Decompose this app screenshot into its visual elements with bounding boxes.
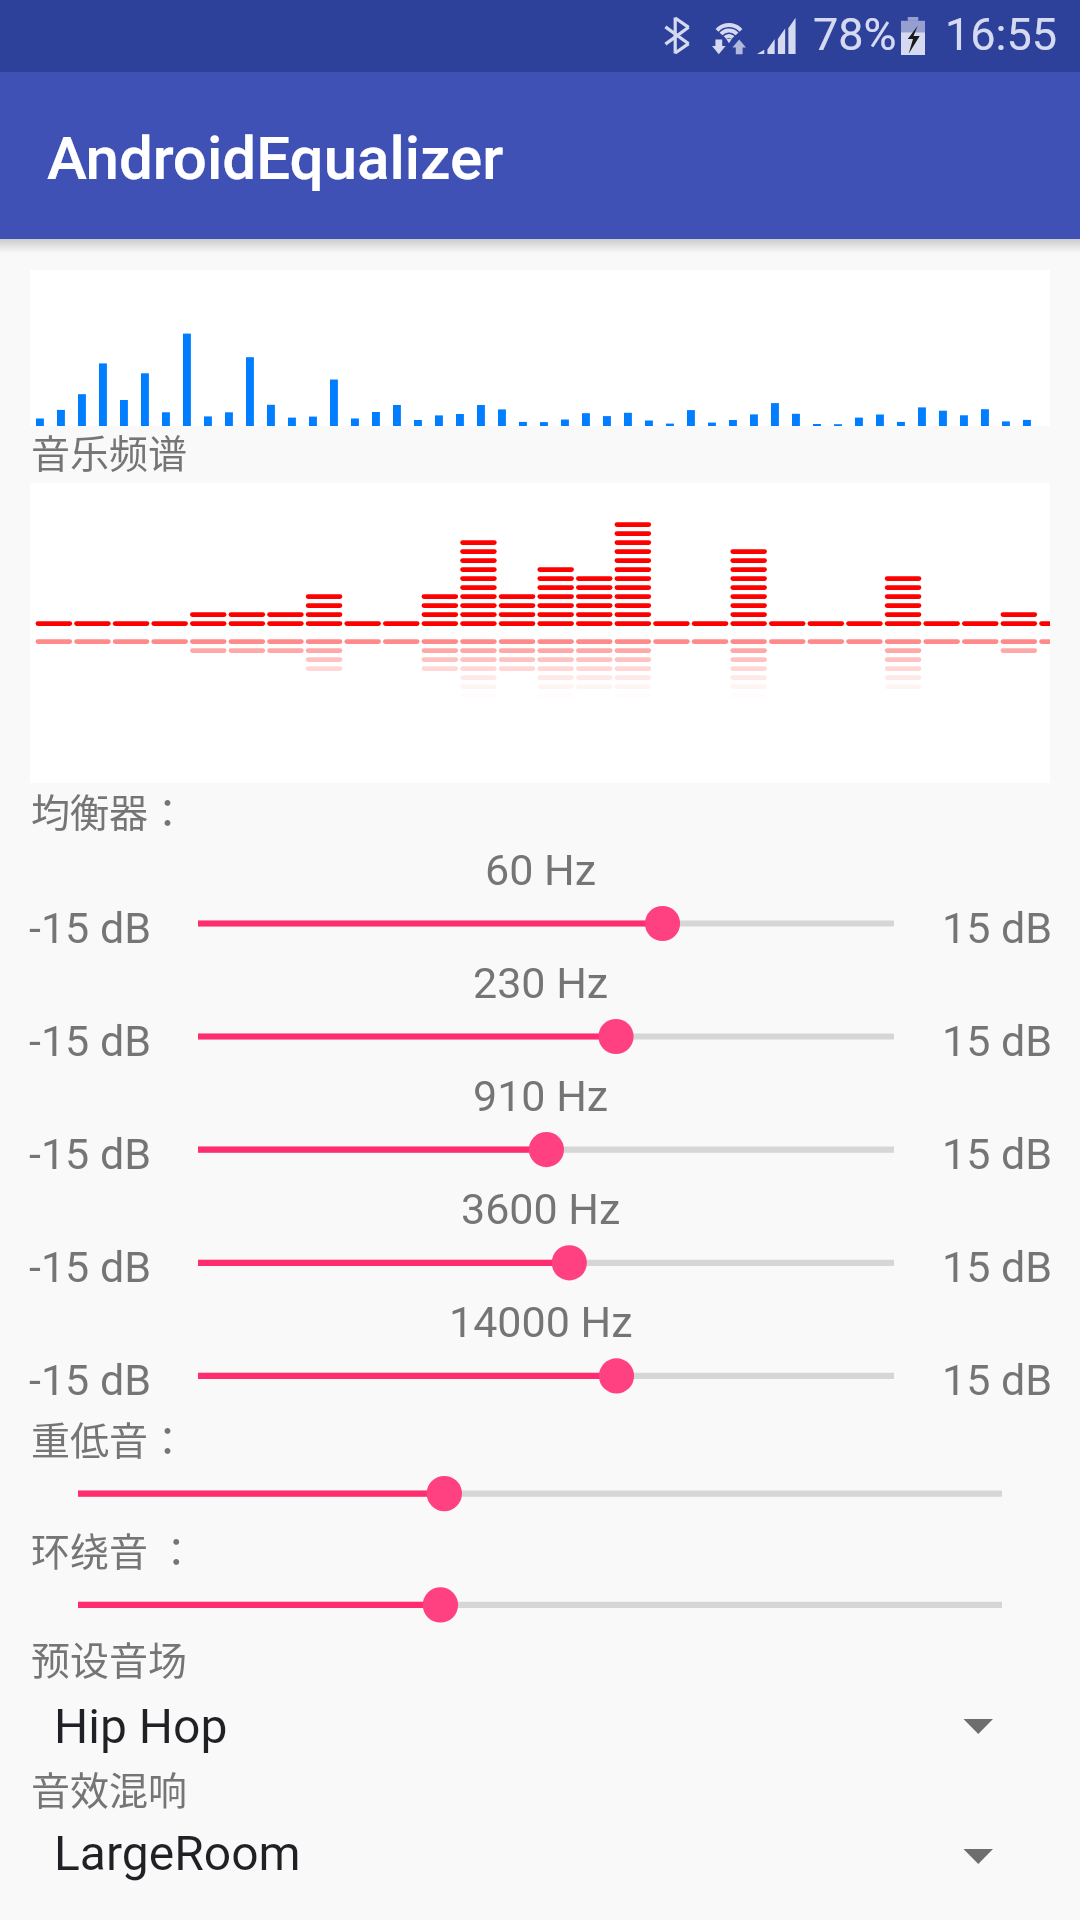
staticText: 均衡器： — [31, 782, 188, 838]
staticText: 15 dB — [942, 1355, 1053, 1405]
staticText: -15 dB — [29, 1016, 151, 1066]
button[interactable]: 3600 Hz level — [190, 1237, 902, 1289]
staticText: -15 dB — [29, 1355, 151, 1405]
staticText: 14000 Hz — [449, 1297, 633, 1347]
staticText: 环绕音 ： — [31, 1521, 196, 1577]
staticText: 230 Hz — [473, 958, 609, 1008]
staticText: 重低音： — [31, 1410, 188, 1466]
staticText: 15 dB — [942, 1016, 1053, 1066]
staticText: 910 Hz — [473, 1071, 609, 1121]
other: Battery charging — [901, 17, 925, 55]
button[interactable]: Virtualizer — [70, 1579, 1010, 1631]
staticText: -15 dB — [29, 1129, 151, 1179]
button[interactable]: 14000 Hz level — [190, 1350, 902, 1402]
staticText: 78% — [813, 8, 897, 61]
staticText: 60 Hz — [485, 845, 597, 895]
other: Signal strength — [757, 18, 795, 54]
staticText: 15 dB — [942, 903, 1053, 953]
staticText: 16:55 — [945, 8, 1058, 61]
staticText: 15 dB — [942, 1242, 1053, 1292]
button[interactable]: Preset: Hip Hop — [30, 1688, 1050, 1758]
staticText: 预设音场 — [31, 1630, 188, 1686]
staticText: 音效混响 — [31, 1760, 188, 1816]
other: Bluetooth — [664, 16, 692, 55]
staticText: LargeRoom — [54, 1825, 301, 1881]
staticText: 15 dB — [942, 1129, 1053, 1179]
other: Wi-Fi — [712, 14, 746, 55]
staticText: -15 dB — [29, 1242, 151, 1292]
staticText: AndroidEqualizer — [47, 123, 504, 193]
staticText: Hip Hop — [54, 1698, 228, 1754]
staticText: 3600 Hz — [461, 1184, 621, 1234]
staticText: 音乐频谱 — [31, 423, 188, 479]
button[interactable]: 60 Hz level — [190, 898, 902, 950]
button[interactable]: Bass boost — [70, 1468, 1010, 1520]
staticText: -15 dB — [29, 903, 151, 953]
button[interactable]: Reverb: LargeRoom — [30, 1818, 1050, 1888]
button[interactable]: 910 Hz level — [190, 1124, 902, 1176]
button[interactable]: 230 Hz level — [190, 1011, 902, 1063]
